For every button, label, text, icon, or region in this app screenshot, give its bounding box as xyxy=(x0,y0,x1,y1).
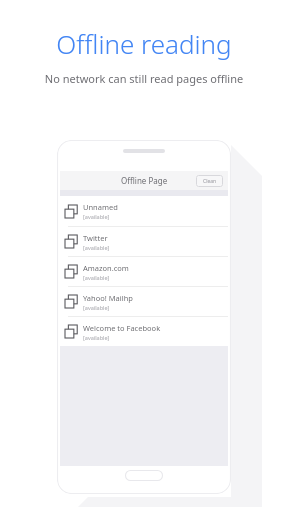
staticText: Welcome to Facebook xyxy=(83,323,161,333)
staticText: Unnamed xyxy=(83,202,118,212)
staticText: Yahoo! Mailhp xyxy=(83,293,133,303)
staticText: Amazon.com xyxy=(83,263,129,273)
staticText: [available] xyxy=(83,213,110,220)
staticText: Twitter xyxy=(83,233,108,243)
staticText: [available] xyxy=(83,274,110,281)
staticText: Clean xyxy=(203,178,217,185)
staticText: [available] xyxy=(83,334,110,341)
button[interactable]: Offline Page xyxy=(60,171,228,190)
button[interactable]: Twitter xyxy=(60,227,228,256)
button[interactable]: Amazon.com xyxy=(60,257,228,286)
button[interactable]: Welcome to Facebook xyxy=(60,317,228,346)
button[interactable]: Yahoo! Mailhp xyxy=(60,287,228,316)
staticText: Offline reading xyxy=(0,26,288,61)
staticText: No network can still read pages offline xyxy=(0,71,288,86)
staticText: [available] xyxy=(83,244,110,251)
button[interactable]: Home xyxy=(125,470,163,481)
staticText: Offline Page xyxy=(121,175,168,186)
button[interactable]: Clean xyxy=(196,175,223,187)
staticText: [available] xyxy=(83,304,110,311)
button[interactable]: Unnamed xyxy=(60,196,228,226)
